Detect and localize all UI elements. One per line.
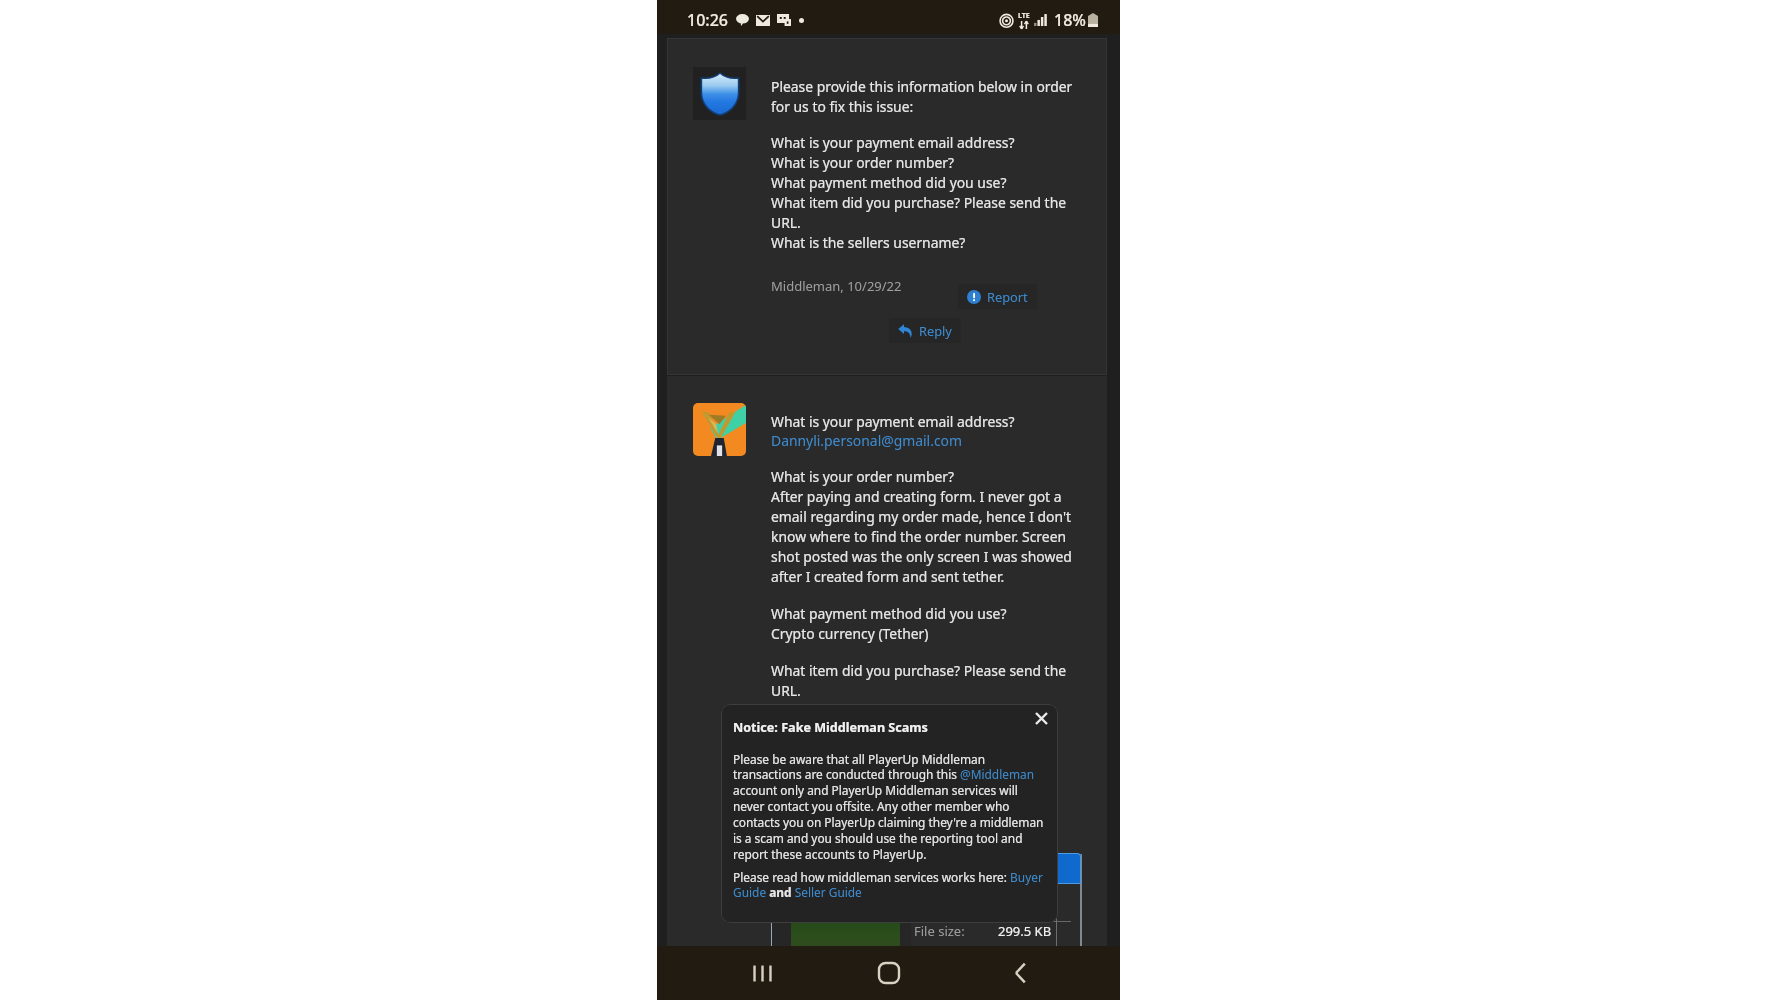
staticText: Please provide this information below in… bbox=[771, 77, 1084, 116]
button[interactable]: Back bbox=[990, 946, 1050, 1000]
staticText: Report bbox=[987, 288, 1028, 305]
staticText: What is the sellers username? Unknown bbox=[771, 755, 966, 794]
staticText: Middleman, 10/29/22 bbox=[771, 277, 902, 295]
staticText: LTE bbox=[1018, 11, 1030, 21]
button[interactable]: Recents bbox=[732, 946, 792, 1000]
staticText: What payment method did you use? Crypto … bbox=[771, 604, 1007, 643]
staticText: 18% bbox=[1054, 9, 1086, 31]
staticText: What item did you purchase? Please send … bbox=[771, 661, 1084, 700]
button[interactable]: Close notice bbox=[1032, 709, 1050, 727]
staticText: 299.5 KB bbox=[998, 922, 1052, 940]
staticText: Dannyli.personal@gmail.com bbox=[771, 431, 962, 450]
button[interactable]: Reply bbox=[889, 318, 961, 343]
staticText: Please read how middleman services works… bbox=[733, 869, 1049, 901]
staticText: https://www.playerup.com/ bbox=[771, 718, 950, 737]
staticText: 10:26 bbox=[687, 9, 728, 31]
staticText: Please be aware that all PlayerUp Middle… bbox=[733, 751, 1049, 863]
staticText: File size: bbox=[914, 922, 965, 940]
staticText: Notice: Fake Middleman Scams bbox=[733, 719, 928, 736]
button[interactable]: Home bbox=[859, 946, 919, 1000]
staticText: What is your order number? After paying … bbox=[771, 467, 1084, 586]
staticText: Reply bbox=[919, 322, 952, 339]
staticText: What is your payment email address? bbox=[771, 412, 1015, 431]
staticText: What is your payment email address? What… bbox=[771, 133, 1084, 252]
button[interactable]: Report bbox=[958, 284, 1037, 309]
